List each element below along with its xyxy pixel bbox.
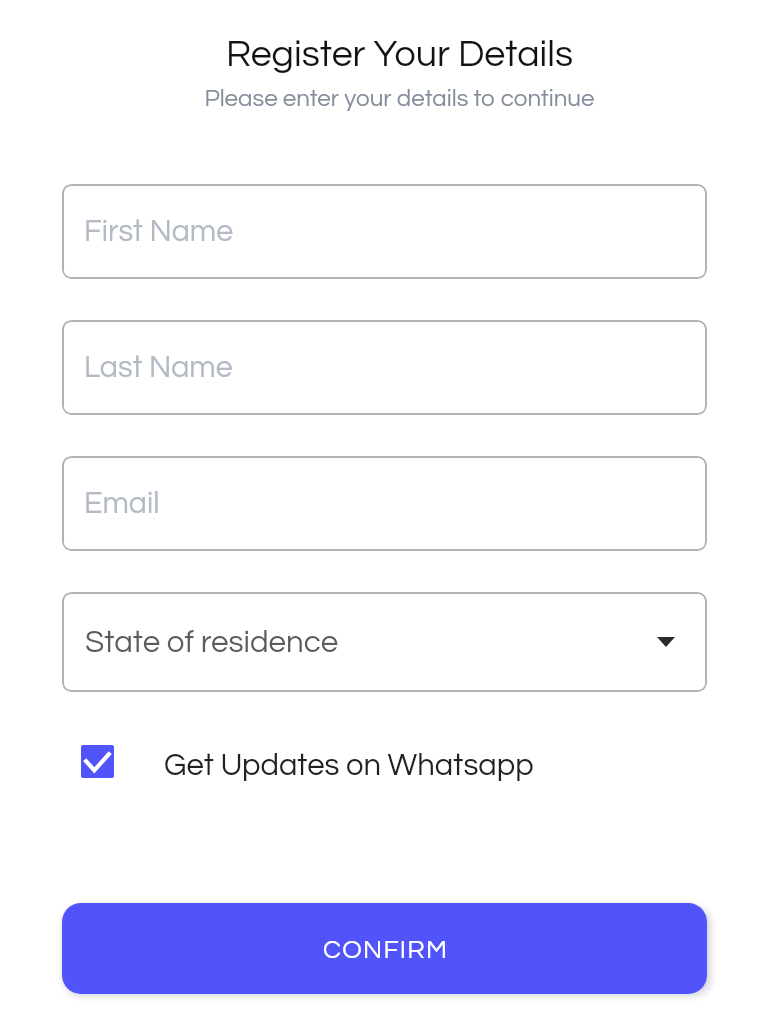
- button[interactable]: First Name: [62, 184, 707, 279]
- staticText: Last Name: [84, 352, 233, 383]
- button[interactable]: Get Updates on Whatsapp checkbox, checke…: [81, 745, 534, 778]
- staticText: Email: [84, 488, 160, 519]
- other: Open state of residence list: [657, 637, 675, 647]
- other: Get Updates on Whatsapp checkbox, checke…: [81, 745, 114, 778]
- staticText: First Name: [84, 216, 234, 247]
- staticText: CONFIRM: [323, 937, 449, 964]
- button[interactable]: Last Name: [62, 320, 707, 415]
- staticText: Please enter your details to continue: [15, 86, 769, 111]
- staticText: Get Updates on Whatsapp: [164, 750, 534, 782]
- button[interactable]: State of residence: [62, 592, 707, 692]
- button[interactable]: CONFIRM: [62, 903, 707, 994]
- staticText: Register Your Details: [15, 35, 769, 74]
- button[interactable]: Email: [62, 456, 707, 551]
- staticText: State of residence: [85, 626, 339, 658]
